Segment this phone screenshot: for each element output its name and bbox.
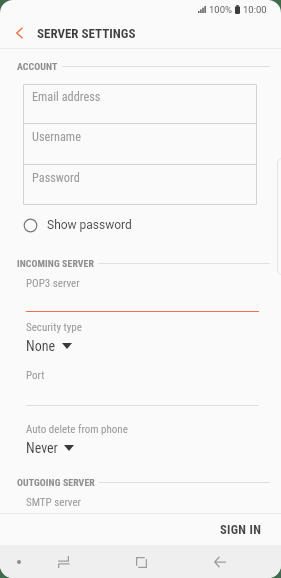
staticText: Show password — [47, 218, 132, 232]
button[interactable]: Username — [23, 124, 257, 164]
staticText: Username — [32, 130, 81, 144]
staticText: INCOMING SERVER — [17, 258, 95, 269]
staticText: POP3 server — [26, 277, 80, 290]
staticText: 100% — [209, 4, 232, 15]
button[interactable]: SMTP server — [26, 496, 258, 513]
button[interactable]: Show password — [23, 214, 132, 236]
staticText: Never — [26, 440, 58, 456]
staticText: Email address — [32, 90, 101, 104]
button[interactable]: Security type — [26, 321, 258, 358]
staticText: Port — [26, 369, 45, 382]
button[interactable]: Assistant — [4, 545, 34, 578]
staticText: Password — [32, 171, 80, 185]
button[interactable]: Back — [198, 545, 242, 578]
button[interactable]: Navigate up — [6, 20, 32, 46]
button[interactable]: SIGN IN — [205, 514, 277, 545]
staticText: Auto delete from phone — [26, 423, 128, 436]
staticText: ACCOUNT — [17, 61, 58, 72]
button[interactable]: POP3 server — [26, 277, 258, 311]
staticText: SMTP server — [26, 496, 81, 509]
staticText: SERVER SETTINGS — [37, 26, 136, 41]
staticText: SIGN IN — [220, 522, 262, 537]
staticText: 10:00 — [243, 4, 267, 15]
staticText: Security type — [26, 321, 82, 334]
button[interactable]: Home — [119, 545, 163, 578]
staticText: None — [26, 338, 56, 354]
button[interactable]: Recent apps — [41, 545, 85, 578]
button[interactable]: Email address — [23, 84, 257, 123]
button[interactable]: Port — [26, 369, 258, 403]
button[interactable]: Password — [23, 165, 257, 205]
button[interactable]: Auto delete from phone — [26, 423, 258, 460]
staticText: OUTGOING SERVER — [17, 477, 95, 488]
